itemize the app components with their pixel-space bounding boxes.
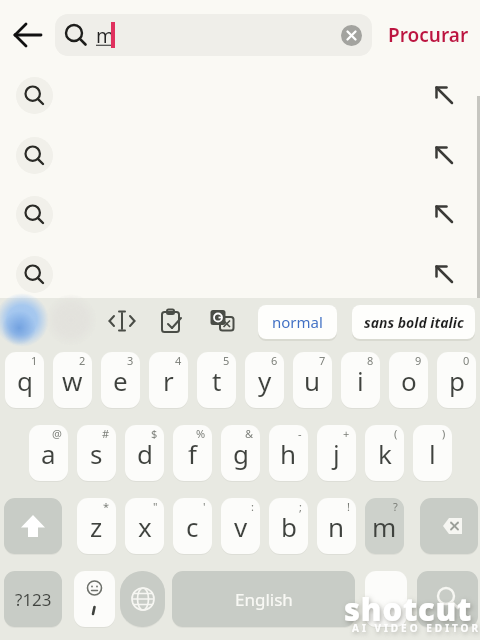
- button[interactable]: [74, 571, 115, 627]
- staticText: $: [151, 426, 158, 441]
- button[interactable]: s: [77, 425, 116, 481]
- button[interactable]: r: [149, 352, 188, 408]
- staticText: x: [138, 509, 152, 544]
- staticText: j: [333, 436, 340, 471]
- button[interactable]: [365, 571, 407, 627]
- staticText: *: [103, 499, 110, 514]
- staticText: ': [203, 499, 206, 514]
- staticText: b: [281, 509, 297, 544]
- button[interactable]: y: [245, 352, 284, 408]
- button[interactable]: [0, 245, 480, 305]
- staticText: p: [449, 363, 465, 398]
- staticText: #: [102, 426, 110, 441]
- staticText: ): [442, 426, 446, 441]
- staticText: &: [245, 426, 254, 441]
- staticText: w: [62, 363, 83, 398]
- staticText: t: [212, 363, 222, 398]
- staticText: 9: [415, 353, 422, 368]
- button[interactable]: n: [317, 498, 356, 554]
- button[interactable]: t: [197, 352, 236, 408]
- staticText: m: [372, 509, 397, 544]
- staticText: g: [233, 436, 249, 471]
- button[interactable]: v: [221, 498, 260, 554]
- staticText: Procurar: [388, 22, 469, 48]
- button[interactable]: sans bold italic: [352, 305, 475, 339]
- button[interactable]: u: [293, 352, 332, 408]
- staticText: k: [378, 436, 392, 471]
- button[interactable]: [417, 571, 478, 627]
- staticText: AI VIDEO EDITOR: [352, 621, 480, 635]
- button[interactable]: normal: [258, 305, 337, 339]
- staticText: 8: [367, 353, 374, 368]
- staticText: d: [137, 436, 153, 471]
- button[interactable]: a: [29, 425, 68, 481]
- staticText: 2: [79, 353, 86, 368]
- button[interactable]: b: [269, 498, 308, 554]
- staticText: e: [113, 363, 128, 398]
- button[interactable]: c: [173, 498, 212, 554]
- button[interactable]: ?123: [4, 571, 62, 627]
- staticText: 0: [463, 353, 470, 368]
- staticText: 3: [127, 353, 134, 368]
- button[interactable]: x: [125, 498, 164, 554]
- staticText: ": [153, 499, 158, 514]
- button[interactable]: e: [101, 352, 140, 408]
- staticText: ;: [299, 499, 302, 514]
- button[interactable]: [120, 571, 165, 627]
- staticText: sans bold italic: [364, 313, 464, 332]
- button[interactable]: l: [413, 425, 452, 481]
- staticText: s: [90, 436, 103, 471]
- button[interactable]: [341, 25, 362, 46]
- staticText: 5: [223, 353, 230, 368]
- button[interactable]: [10, 17, 46, 53]
- button[interactable]: [0, 66, 480, 126]
- staticText: 7: [319, 353, 326, 368]
- staticText: %: [196, 426, 206, 441]
- staticText: +: [343, 426, 350, 441]
- staticText: English: [235, 588, 293, 611]
- staticText: 4: [175, 353, 182, 368]
- button[interactable]: g: [221, 425, 260, 481]
- button[interactable]: h: [269, 425, 308, 481]
- button[interactable]: [108, 307, 136, 335]
- staticText: 6: [271, 353, 278, 368]
- staticText: shotcut: [344, 588, 473, 630]
- staticText: c: [186, 509, 199, 544]
- button[interactable]: [420, 498, 478, 554]
- staticText: !: [347, 499, 350, 514]
- button[interactable]: z: [77, 498, 116, 554]
- button[interactable]: m: [55, 14, 372, 56]
- staticText: -: [298, 426, 302, 441]
- staticText: :: [251, 499, 254, 514]
- staticText: f: [188, 436, 197, 471]
- staticText: (: [394, 426, 398, 441]
- button[interactable]: q: [5, 352, 44, 408]
- button[interactable]: [4, 498, 62, 554]
- button[interactable]: k: [365, 425, 404, 481]
- button[interactable]: [0, 185, 480, 245]
- button[interactable]: p: [437, 352, 476, 408]
- button[interactable]: f: [173, 425, 212, 481]
- staticText: l: [429, 436, 436, 471]
- button[interactable]: d: [125, 425, 164, 481]
- staticText: q: [17, 363, 33, 398]
- button[interactable]: [157, 307, 185, 335]
- staticText: v: [234, 509, 248, 544]
- button[interactable]: [0, 126, 480, 186]
- staticText: o: [401, 363, 417, 398]
- staticText: ?: [393, 499, 398, 514]
- staticText: r: [163, 363, 174, 398]
- button[interactable]: o: [389, 352, 428, 408]
- button[interactable]: Procurar: [388, 22, 469, 48]
- button[interactable]: m: [365, 498, 404, 554]
- staticText: normal: [272, 312, 323, 332]
- button[interactable]: w: [53, 352, 92, 408]
- button[interactable]: English: [172, 571, 355, 627]
- staticText: 1: [31, 353, 38, 368]
- button[interactable]: [208, 307, 236, 335]
- staticText: @: [52, 426, 62, 441]
- staticText: ?123: [15, 588, 52, 611]
- staticText: i: [357, 363, 364, 398]
- button[interactable]: j: [317, 425, 356, 481]
- button[interactable]: i: [341, 352, 380, 408]
